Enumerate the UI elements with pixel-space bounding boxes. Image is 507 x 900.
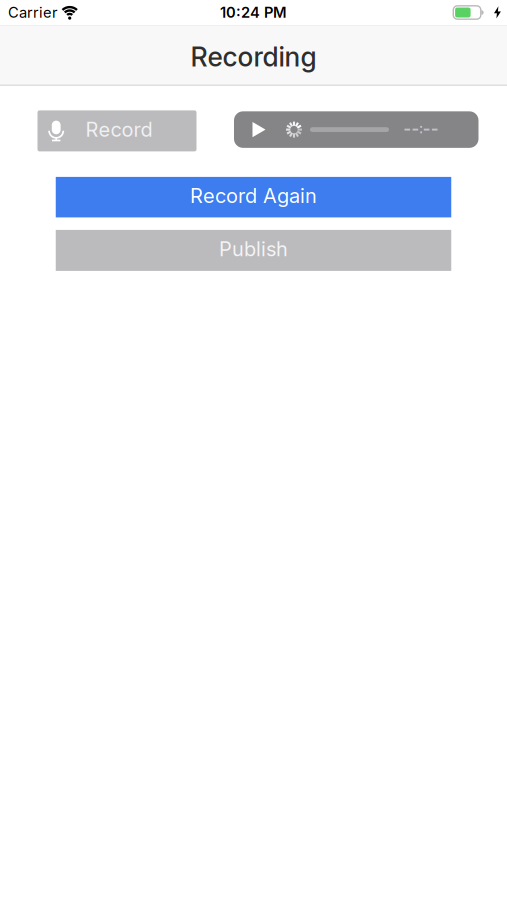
- staticText: 10:24 PM: [220, 4, 287, 21]
- staticText: Recording: [190, 41, 316, 72]
- staticText: Carrier: [8, 4, 58, 21]
- button[interactable]: Play: [234, 122, 285, 137]
- button[interactable]: Publish: [56, 230, 451, 271]
- staticText: Record: [85, 118, 152, 141]
- button[interactable]: Record Again: [56, 177, 451, 217]
- button[interactable]: Record: [37, 110, 196, 151]
- staticText: Record Again: [190, 184, 317, 207]
- staticText: Publish: [219, 237, 288, 261]
